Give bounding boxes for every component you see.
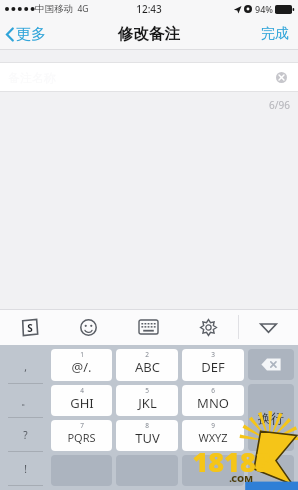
- staticText: JKL: [138, 394, 157, 412]
- button[interactable]: 8: [116, 420, 178, 451]
- staticText: 94%: [255, 3, 273, 15]
- button[interactable]: 换行: [248, 384, 294, 451]
- button[interactable]: ,: [4, 349, 47, 384]
- staticText: ?: [23, 428, 28, 442]
- button[interactable]: 2: [116, 349, 178, 381]
- button[interactable]: !: [4, 452, 47, 486]
- staticText: 6: [211, 386, 215, 395]
- staticText: 9: [211, 421, 215, 430]
- staticText: 18183: [192, 443, 272, 480]
- staticText: PQRS: [67, 430, 96, 445]
- staticText: 8: [145, 421, 149, 430]
- staticText: @/.: [71, 358, 92, 376]
- staticText: 中国移动: [35, 3, 73, 15]
- staticText: 3: [211, 350, 215, 359]
- button[interactable]: Clear text: [271, 67, 291, 87]
- button[interactable]: 1: [51, 349, 112, 381]
- button[interactable]: 7: [51, 420, 112, 451]
- button[interactable]: Keyboard layout: [118, 309, 178, 345]
- button[interactable]: 。: [4, 384, 47, 418]
- staticText: WXYZ: [198, 430, 228, 445]
- staticText: DEF: [201, 358, 225, 376]
- staticText: MNO: [197, 394, 229, 412]
- staticText: 1: [80, 350, 84, 359]
- button[interactable]: ?: [4, 418, 47, 452]
- button[interactable]: Hide keyboard: [238, 309, 298, 345]
- staticText: 更多: [16, 25, 46, 44]
- staticText: 。: [21, 395, 31, 408]
- staticText: 6/96: [269, 98, 290, 112]
- staticText: 修改备注: [118, 24, 180, 44]
- button[interactable]: 完成: [252, 18, 298, 50]
- staticText: TUV: [135, 429, 160, 447]
- button[interactable]: 6: [182, 385, 244, 416]
- staticText: ABC: [135, 358, 160, 376]
- staticText: 5: [145, 386, 149, 395]
- staticText: .COM: [229, 472, 253, 484]
- button[interactable]: 5: [116, 385, 178, 416]
- staticText: S: [27, 321, 33, 335]
- button[interactable]: Key: [182, 455, 244, 486]
- button[interactable]: 备注名称: [0, 62, 298, 92]
- button[interactable]: Backspace: [248, 349, 294, 380]
- staticText: GHI: [70, 394, 94, 412]
- button[interactable]: Emoji: [59, 309, 118, 345]
- button[interactable]: 3: [182, 349, 244, 381]
- button[interactable]: Settings: [178, 309, 238, 345]
- staticText: !: [24, 462, 27, 476]
- staticText: 完成: [261, 25, 289, 43]
- button[interactable]: 9: [182, 420, 244, 451]
- staticText: 7: [80, 421, 84, 430]
- staticText: 4G: [77, 3, 89, 15]
- staticText: 4: [80, 386, 84, 395]
- button[interactable]: Sogou input method: [0, 309, 59, 345]
- button[interactable]: 更多: [0, 18, 56, 50]
- button[interactable]: Send: [248, 455, 294, 486]
- staticText: 2: [145, 350, 149, 359]
- staticText: 换行: [258, 410, 284, 426]
- button[interactable]: 4: [51, 385, 112, 416]
- staticText: ,: [24, 360, 27, 374]
- staticText: 12:43: [136, 2, 162, 16]
